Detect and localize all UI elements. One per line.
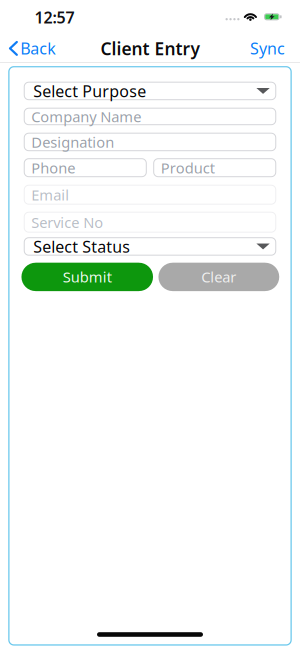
textField[interactable]: Service No [24, 212, 276, 233]
staticText: Select Purpose [33, 80, 146, 101]
textField[interactable]: Company Name [24, 108, 276, 125]
staticText: Service No [31, 212, 103, 232]
staticText: Client Entry [100, 37, 199, 60]
staticText: Sync [250, 38, 285, 59]
textField[interactable]: Product [153, 158, 276, 177]
button[interactable]: Submit [21, 263, 153, 291]
textField[interactable]: Designation [24, 133, 276, 151]
staticText: Designation [31, 132, 114, 152]
staticText: Email [31, 185, 69, 204]
staticText: Company Name [31, 107, 141, 126]
staticText: Product [161, 158, 215, 177]
button[interactable]: Sync [250, 38, 300, 59]
button[interactable]: Clear [158, 263, 279, 291]
button[interactable]: Select Purpose [24, 80, 276, 101]
staticText: Back [20, 38, 56, 59]
staticText: Select Status [33, 236, 130, 257]
textField[interactable]: Email [24, 185, 276, 205]
staticText: Submit [63, 267, 112, 287]
staticText: 12:57 [34, 7, 74, 28]
staticText: Clear [201, 267, 236, 287]
staticText: Phone [31, 158, 75, 177]
textField[interactable]: Phone [24, 158, 147, 177]
button[interactable]: Back [0, 38, 56, 59]
button[interactable]: Select Status [24, 236, 276, 257]
